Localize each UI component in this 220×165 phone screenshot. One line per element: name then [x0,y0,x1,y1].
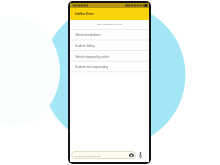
button[interactable]: Voice input [136,150,145,159]
button[interactable]: Student Safety [70,40,149,51]
button[interactable]: Vehicle breakdown [70,29,149,40]
button[interactable]: Enter custom message [71,151,136,159]
staticText: Vehicle stopped by police [75,55,110,59]
staticText: Tap a message to send [97,23,122,26]
staticText: SafeBus Driver [75,12,94,16]
staticText: Enter custom message [75,154,127,157]
button[interactable]: Camera [127,151,136,159]
staticText: Vehicle breakdown [75,33,101,37]
staticText: Student Safety [75,44,95,48]
button[interactable]: Student not cooperating [70,62,149,72]
button[interactable]: Vehicle stopped by police [70,51,149,62]
staticText: Student not cooperating [75,65,109,69]
